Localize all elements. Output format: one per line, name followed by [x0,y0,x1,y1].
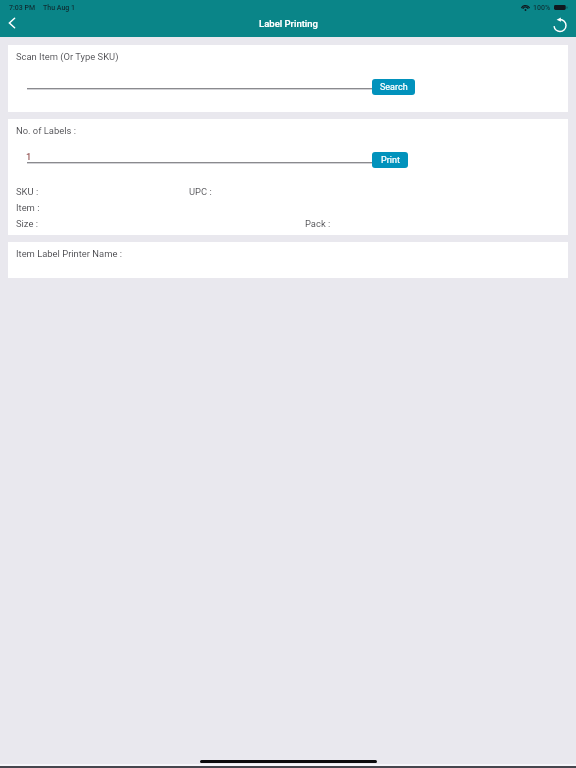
staticText: 100% [533,4,551,12]
staticText: 7:03 PM [9,4,36,12]
staticText: Print [381,155,400,166]
button[interactable]: Search [372,79,415,95]
staticText: Size : [16,218,39,229]
button[interactable]: Back [0,10,25,36]
staticText: UPC : [189,186,212,197]
staticText: Search [380,82,408,93]
button[interactable]: Scan Item (Or Type SKU) input [27,72,373,90]
staticText: Scan Item (Or Type SKU) [16,51,119,62]
button[interactable]: Refresh [548,13,572,37]
staticText: Item Label Printer Name : [16,248,122,259]
staticText: 1 [26,151,32,162]
staticText: No. of Labels : [16,125,76,136]
staticText: Pack : [305,218,331,229]
staticText: Item : [16,202,40,213]
staticText: Thu Aug 1 [43,4,75,12]
staticText: Label Printing [259,18,318,29]
button[interactable]: 1 [27,146,373,164]
staticText: SKU : [16,186,39,197]
button[interactable]: Print [372,152,408,168]
